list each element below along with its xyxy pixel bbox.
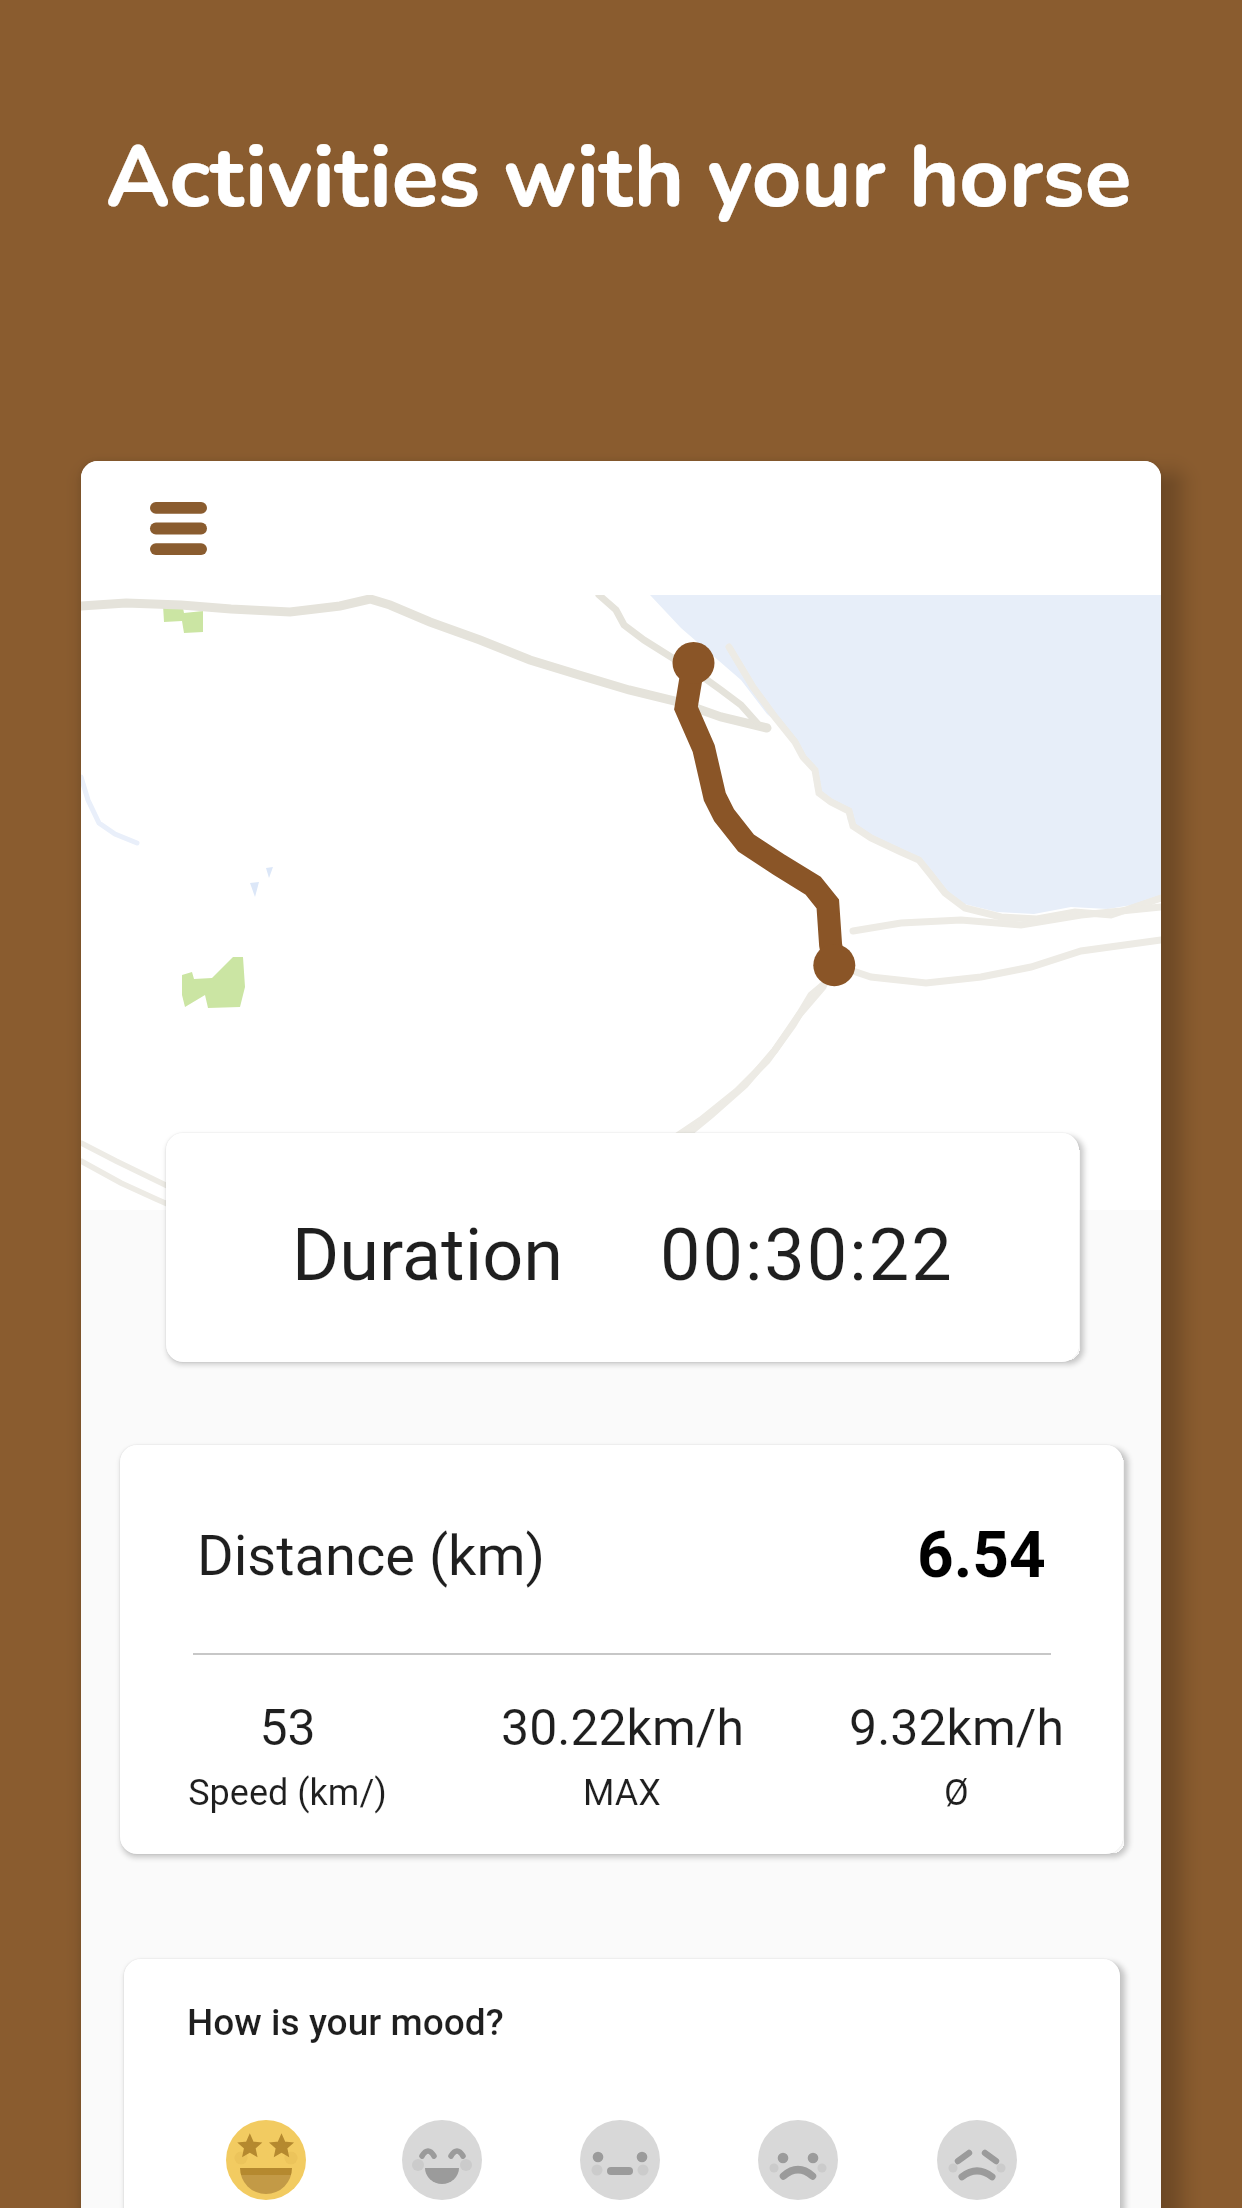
staticText: 53 — [259, 1699, 316, 1758]
staticText: MAX — [583, 1772, 661, 1814]
staticText: 30.22km/h — [501, 1699, 744, 1758]
staticText: 6.54 — [917, 1518, 1046, 1593]
staticText: 00:30:22 — [660, 1213, 954, 1297]
button[interactable]: Mood 4 — [758, 2120, 838, 2200]
button[interactable]: Mood 5 — [937, 2120, 1017, 2200]
button[interactable]: Menu — [150, 502, 207, 555]
button[interactable]: Mood 2 — [402, 2120, 482, 2200]
button[interactable]: Duration — [166, 1133, 1079, 1362]
staticText: Activities with your horse — [106, 120, 1132, 237]
staticText: Ø — [944, 1772, 969, 1814]
button[interactable]: Mood 3 — [580, 2120, 660, 2200]
button[interactable]: Mood 1 — [226, 2120, 306, 2200]
staticText: Distance (km) — [197, 1523, 546, 1589]
staticText: Duration — [292, 1213, 563, 1297]
staticText: How is your mood? — [187, 2001, 504, 2044]
button[interactable]: Distance (km) — [120, 1445, 1123, 1854]
staticText: Speed (km/) — [188, 1772, 387, 1814]
staticText: 9.32km/h — [849, 1699, 1064, 1758]
